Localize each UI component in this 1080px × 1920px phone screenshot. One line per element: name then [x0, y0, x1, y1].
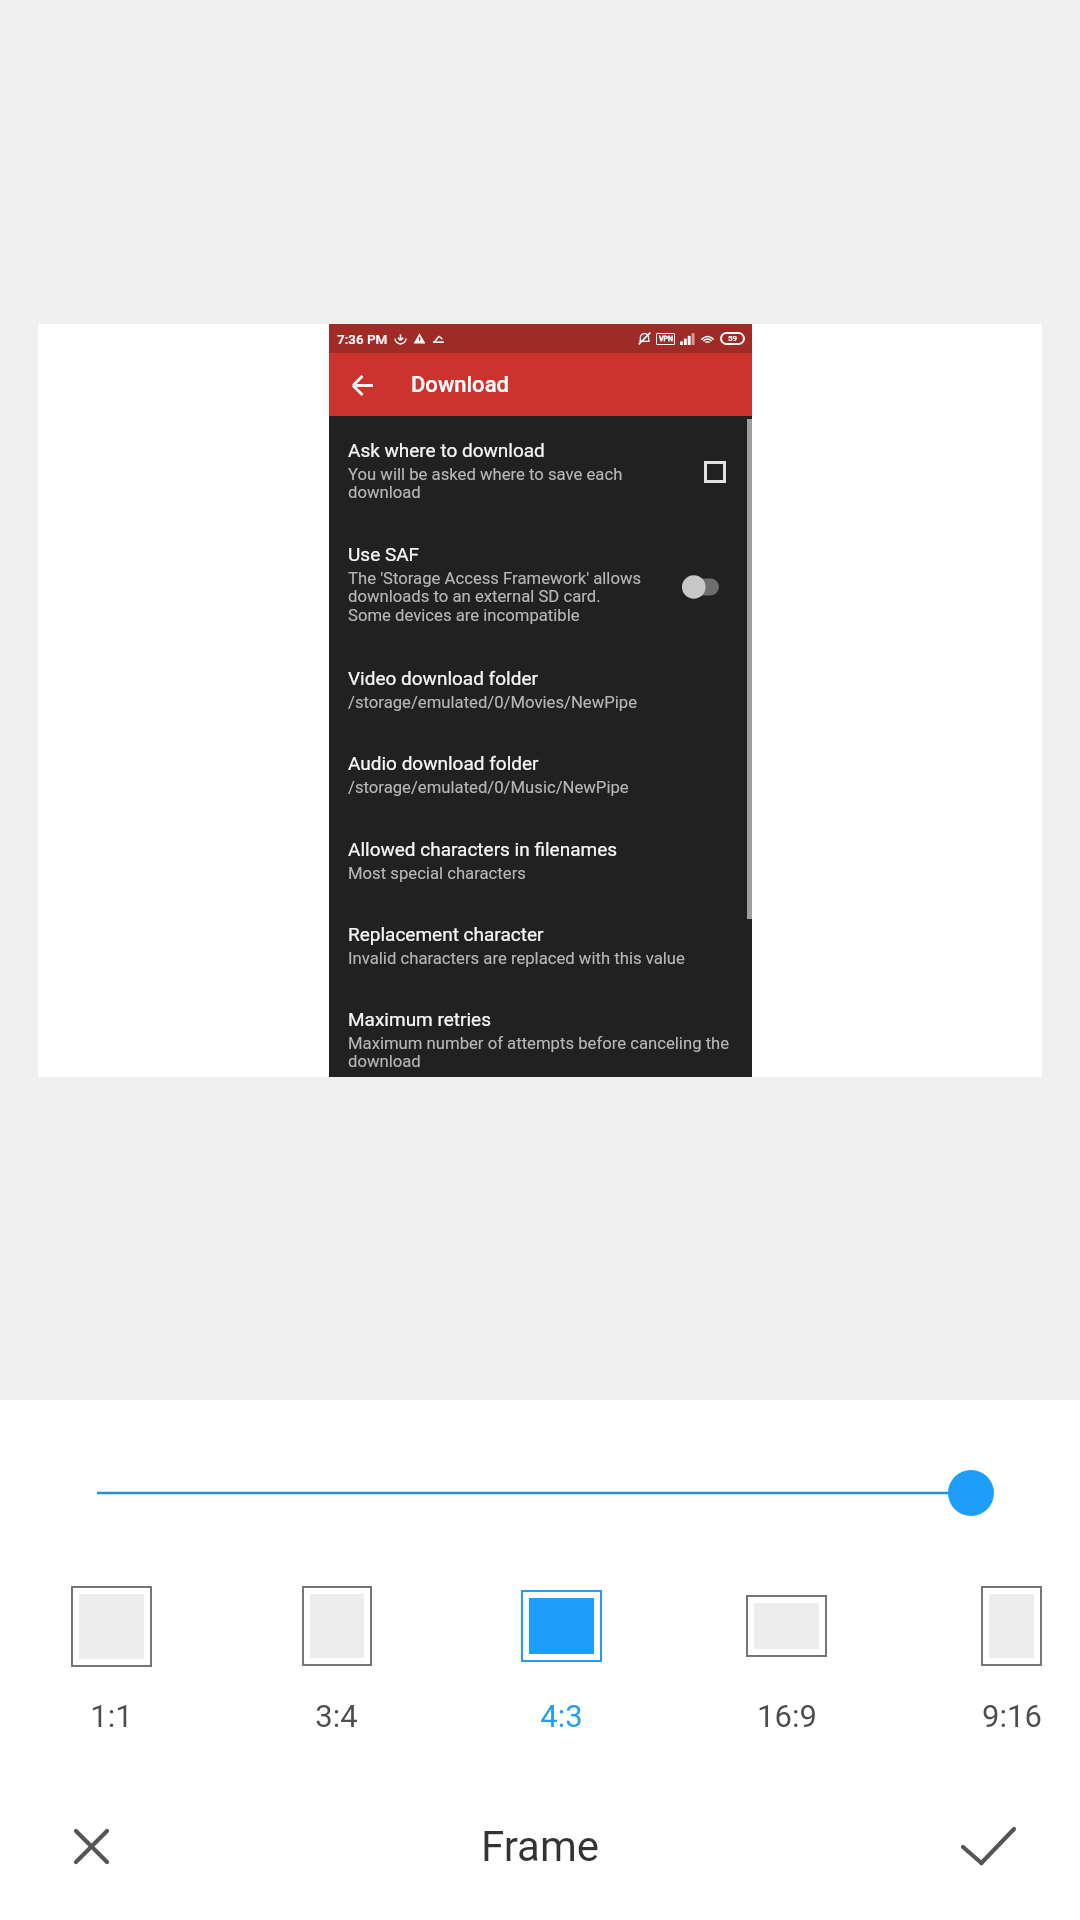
staticText: 1:1	[90, 1698, 133, 1734]
staticText: Some devices are incompatible	[348, 606, 580, 626]
button[interactable]: Aspect ratio 4:3	[449, 1583, 674, 1753]
staticText: Invalid characters are replaced with thi…	[348, 949, 685, 969]
button[interactable]: Maximum retries	[329, 1008, 752, 1085]
button[interactable]: Aspect ratio 3:4	[224, 1583, 449, 1753]
staticText: 9:16	[982, 1698, 1042, 1734]
staticText: Download	[411, 372, 509, 398]
button[interactable]: Cancel	[56, 1811, 126, 1881]
staticText: You will be asked where to save each	[348, 465, 623, 485]
staticText: /storage/emulated/0/Music/NewPipe	[348, 778, 629, 798]
button[interactable]: Replacement character	[329, 923, 752, 981]
staticText: Audio download folder	[348, 752, 539, 774]
button[interactable]: Aspect ratio 16:9	[674, 1583, 899, 1753]
staticText: 7:36 PM	[337, 331, 388, 347]
button[interactable]: Confirm	[953, 1811, 1023, 1881]
staticText: Most special characters	[348, 864, 526, 884]
staticText: Allowed characters in filenames	[348, 838, 618, 860]
staticText: Maximum number of attempts before cancel…	[348, 1034, 730, 1054]
staticText: Ask where to download	[348, 439, 545, 461]
staticText: 4:3	[540, 1698, 583, 1734]
button[interactable]: Aspect ratio 1:1	[0, 1583, 224, 1753]
button[interactable]: Use SAF switch	[682, 575, 719, 599]
staticText: download	[348, 1052, 421, 1072]
staticText: Use SAF	[348, 543, 420, 565]
staticText: Frame	[481, 1822, 600, 1871]
button[interactable]: Zoom slider	[948, 1470, 994, 1516]
staticText: 59	[728, 334, 738, 343]
staticText: downloads to an external SD card.	[348, 587, 601, 607]
staticText: 16:9	[757, 1698, 817, 1734]
button[interactable]: Ask where to download	[329, 439, 752, 516]
button[interactable]: Aspect ratio 9:16	[899, 1583, 1080, 1753]
button[interactable]: Audio download folder	[329, 752, 752, 810]
staticText: Replacement character	[348, 923, 544, 945]
staticText: The 'Storage Access Framework' allows	[348, 569, 642, 589]
staticText: 3:4	[315, 1698, 358, 1734]
button[interactable]: Back	[348, 376, 378, 395]
staticText: VPN	[659, 335, 673, 343]
button[interactable]: Use SAF	[329, 543, 752, 638]
button[interactable]: Video download folder	[329, 667, 752, 725]
button[interactable]: Allowed characters in filenames	[329, 838, 752, 896]
staticText: Maximum retries	[348, 1008, 491, 1030]
staticText: download	[348, 483, 421, 503]
button[interactable]: Ask where to download checkbox	[704, 461, 726, 483]
staticText: Video download folder	[348, 667, 538, 689]
staticText: /storage/emulated/0/Movies/NewPipe	[348, 693, 638, 713]
